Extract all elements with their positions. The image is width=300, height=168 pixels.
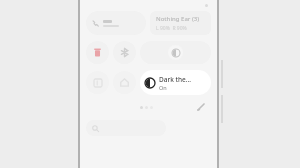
staticText: Nothing Ear (3): [156, 15, 200, 23]
staticText: L 90% R 90%: [156, 25, 187, 32]
button[interactable]: Edit: [195, 101, 207, 113]
staticText: On: [159, 84, 167, 91]
button[interactable]: Home devices: [113, 71, 136, 94]
staticText: Dark the…: [159, 75, 192, 84]
button[interactable]: Screen record: [86, 71, 109, 94]
button[interactable]: Flashlight: [86, 41, 109, 64]
button[interactable]: [86, 11, 146, 35]
button[interactable]: Bluetooth: [113, 41, 136, 64]
button[interactable]: Nothing Ear (3): [150, 11, 211, 35]
button[interactable]: Dark the…: [140, 70, 211, 95]
button[interactable]: Brightness: [140, 41, 211, 64]
